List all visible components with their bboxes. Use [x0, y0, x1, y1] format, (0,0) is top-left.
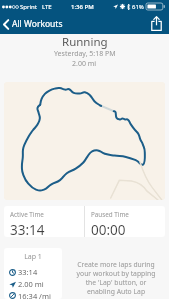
staticText: 61%	[132, 3, 144, 11]
staticText: Running	[62, 34, 108, 50]
staticText: Sprint	[20, 3, 37, 11]
button[interactable]: Active Time	[4, 206, 84, 237]
staticText: 33:14	[18, 267, 38, 277]
staticText: 2.00 mi	[18, 279, 44, 289]
staticText: Paused Time	[91, 210, 129, 219]
staticText: Yesterday, 5:18 PM	[54, 49, 116, 59]
staticText: 2.00 mi	[72, 59, 97, 69]
staticText: Create more laps during your workout by …	[73, 260, 159, 296]
staticText: Lap 1	[4, 252, 62, 262]
button[interactable]: Lap 1	[4, 248, 62, 299]
staticText: 16:34 /mi	[18, 291, 51, 299]
button[interactable]: All Workouts	[0, 15, 71, 33]
staticText: All Workouts	[12, 18, 63, 30]
staticText: LTE	[42, 3, 52, 11]
button[interactable]: Paused Time	[85, 206, 165, 237]
staticText: 00:00	[91, 221, 126, 237]
staticText: 33:14	[10, 221, 45, 237]
staticText: 1:36 PM	[71, 3, 94, 11]
staticText: Active Time	[10, 210, 44, 219]
button[interactable]: Share	[143, 14, 169, 33]
